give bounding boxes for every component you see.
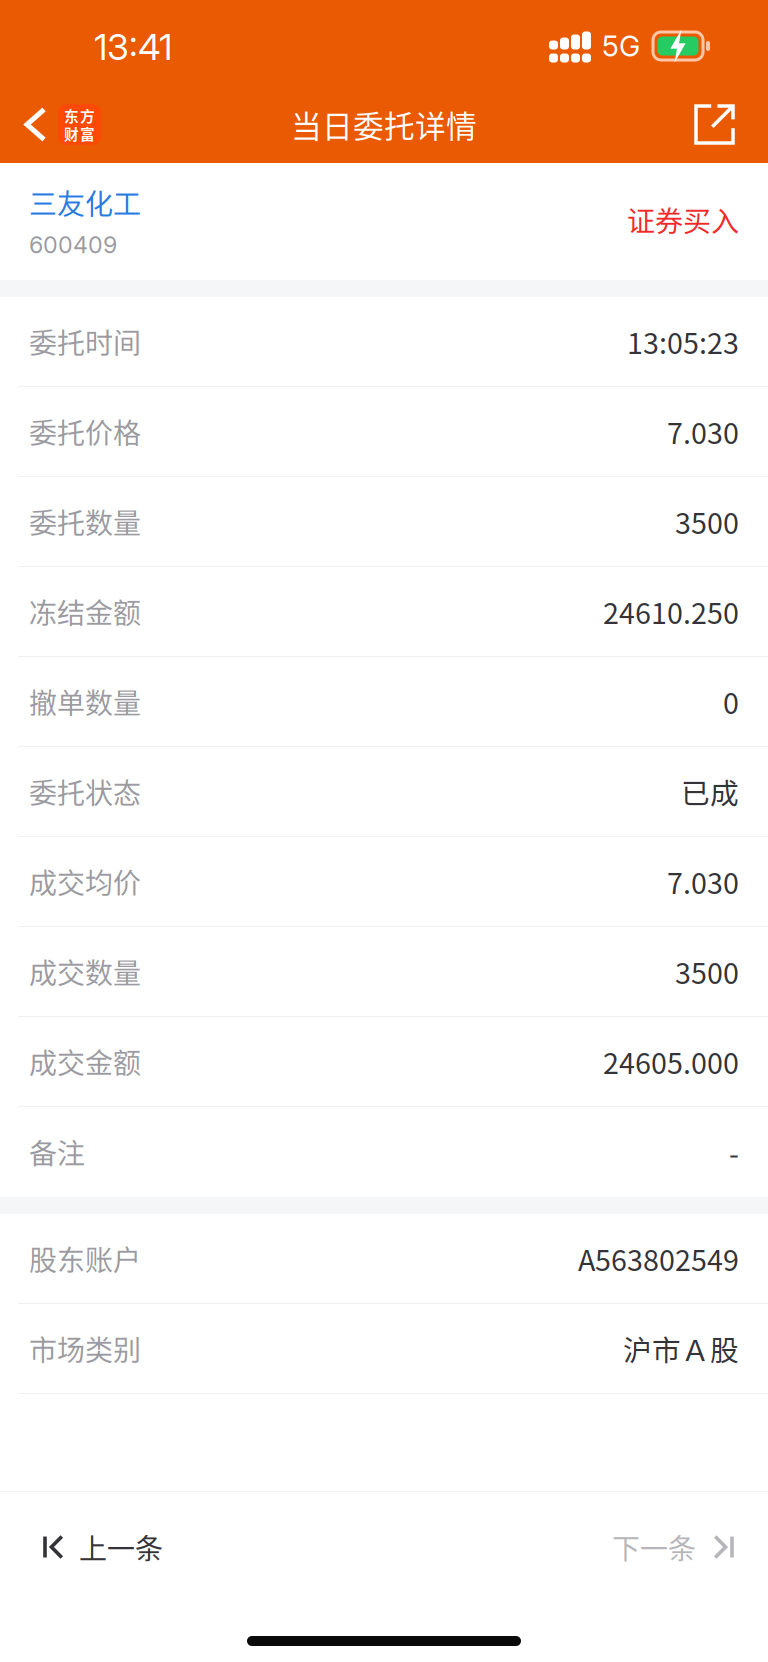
button[interactable]: 下一条 — [576, 1492, 768, 1610]
staticText: - — [729, 1131, 739, 1173]
staticText: 市场类别 — [29, 1328, 141, 1369]
button[interactable]: 上一条 — [0, 1492, 199, 1610]
staticText: 7.030 — [667, 411, 739, 452]
button[interactable]: 返回 东方财富 — [0, 86, 119, 163]
staticText: 5G — [602, 29, 640, 63]
staticText: 富 — [80, 123, 95, 144]
staticText: 三友化工 — [29, 182, 141, 223]
staticText: 方 — [80, 105, 95, 126]
staticText: 委托状态 — [29, 771, 141, 812]
staticText: 3500 — [675, 501, 739, 542]
staticText: 13:41 — [94, 25, 172, 69]
staticText: 3500 — [675, 951, 739, 992]
staticText: 13:05:23 — [627, 321, 739, 362]
staticText: A563802549 — [578, 1238, 739, 1279]
staticText: 24610.250 — [603, 591, 739, 632]
staticText: 委托数量 — [29, 501, 141, 542]
staticText: 0 — [723, 681, 739, 722]
staticText: 当日委托详情 — [291, 102, 477, 147]
staticText: 上一条 — [79, 1527, 163, 1567]
staticText: 东 — [64, 105, 79, 126]
staticText: 撤单数量 — [29, 681, 141, 722]
staticText: 成交金额 — [29, 1041, 141, 1082]
staticText: 成交数量 — [29, 951, 141, 992]
staticText: 7.030 — [667, 861, 739, 902]
staticText: 成交均价 — [29, 861, 141, 902]
staticText: 24605.000 — [603, 1041, 739, 1082]
staticText: 证券买入 — [627, 199, 739, 240]
staticText: 委托时间 — [29, 321, 141, 362]
staticText: 下一条 — [612, 1527, 696, 1567]
staticText: 委托价格 — [29, 411, 141, 452]
button[interactable]: 分享 — [666, 86, 768, 163]
staticText: 600409 — [29, 231, 117, 259]
staticText: 已成 — [681, 771, 739, 812]
staticText: 冻结金额 — [29, 591, 141, 632]
staticText: 财 — [64, 123, 79, 144]
staticText: 沪市Ａ股 — [623, 1328, 739, 1369]
staticText: 股东账户 — [29, 1238, 141, 1279]
staticText: 备注 — [29, 1132, 85, 1172]
